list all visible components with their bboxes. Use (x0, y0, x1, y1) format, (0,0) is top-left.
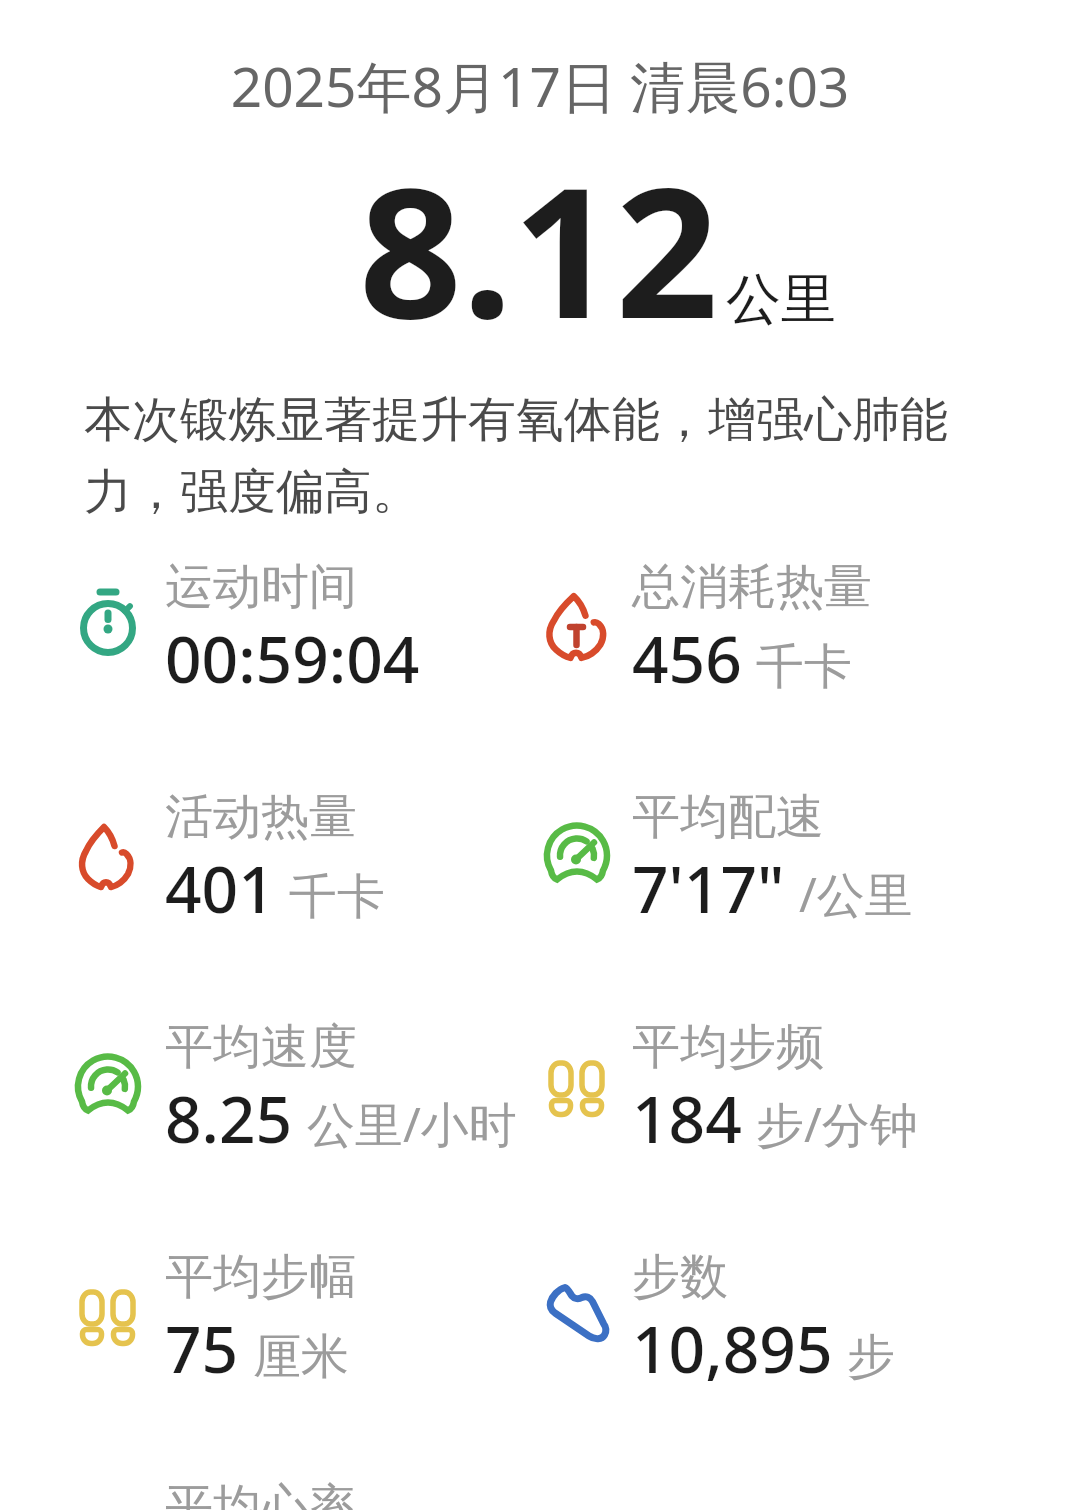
staticText: 平均步幅 (165, 1247, 357, 1307)
staticText: 7'17" (632, 845, 785, 932)
staticText: 本次锻炼显著提升有氧体能，增强心肺能 力，强度偏高。 (84, 390, 948, 522)
button[interactable]: 步数 (632, 1247, 895, 1394)
staticText: 步数 (632, 1247, 728, 1307)
staticText: 平均配速 (632, 787, 824, 847)
staticText: 75 (165, 1305, 239, 1392)
staticText: 活动热量 (165, 787, 357, 847)
button[interactable]: 总消耗热量 (632, 557, 872, 704)
button[interactable]: 平均配速 (632, 787, 913, 934)
staticText: 公里 (726, 265, 836, 334)
staticText: 平均速度 (165, 1017, 357, 1077)
staticText: 2025年8月17日 清晨6:03 (0, 48, 1080, 123)
button[interactable]: 活动热量 (165, 787, 385, 934)
staticText: 401 (165, 845, 275, 932)
staticText: /公里 (799, 861, 913, 927)
staticText: 千卡 (756, 637, 852, 697)
button[interactable]: 平均步频 (632, 1017, 918, 1164)
staticText: 厘米 (253, 1327, 349, 1387)
button[interactable]: 运动时间 (165, 557, 420, 704)
staticText: 平均心率 (165, 1477, 357, 1510)
staticText: 平均步频 (632, 1017, 824, 1077)
button[interactable]: 平均步幅 (165, 1247, 357, 1394)
staticText: 公里/小时 (307, 1091, 517, 1157)
staticText: 步/分钟 (756, 1091, 918, 1157)
staticText: 184 (632, 1075, 742, 1162)
staticText: 运动时间 (165, 557, 357, 617)
staticText: 8.25 (165, 1075, 293, 1162)
staticText: 10,895 (632, 1305, 833, 1392)
staticText: 总消耗热量 (632, 557, 872, 617)
staticText: 8.12 (359, 126, 719, 371)
button[interactable]: 平均速度 (165, 1017, 517, 1164)
button[interactable]: 平均心率 (165, 1477, 357, 1510)
staticText: 千卡 (289, 867, 385, 927)
staticText: 步 (847, 1327, 895, 1387)
staticText: 456 (632, 615, 742, 702)
staticText: 00:59:04 (165, 615, 420, 702)
